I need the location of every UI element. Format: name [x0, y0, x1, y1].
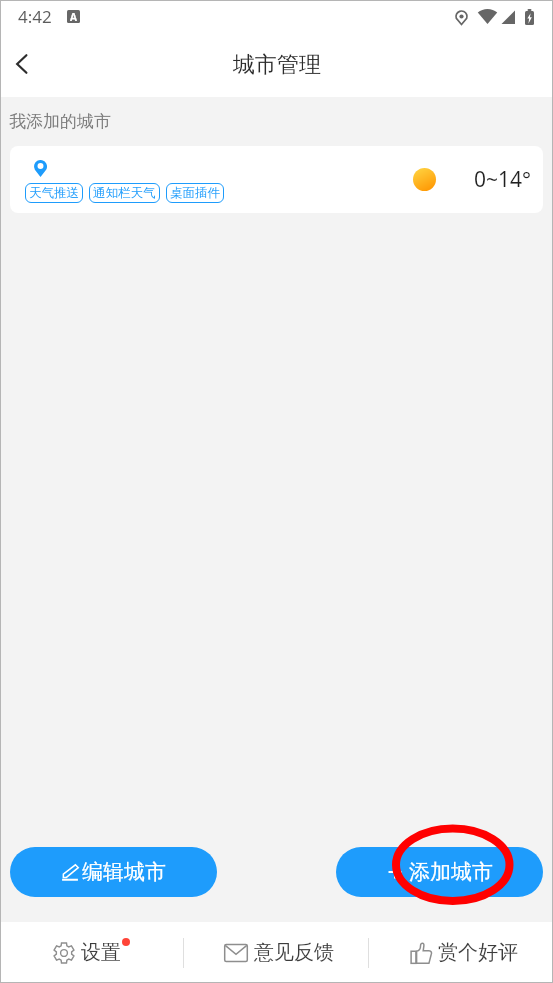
staticText: 赏个好评 — [438, 940, 518, 965]
staticText: 我添加的城市 — [9, 111, 111, 132]
staticText: 4:42 — [18, 5, 52, 28]
button[interactable]: 天气推送 — [10, 146, 543, 213]
button[interactable]: 编辑城市 — [10, 847, 217, 897]
button[interactable]: 添加城市 — [336, 847, 543, 897]
staticText: 城市管理 — [233, 51, 321, 79]
button[interactable]: 赏个好评 — [369, 922, 553, 983]
button[interactable]: 设置 — [0, 922, 183, 983]
staticText: 0~14° — [474, 165, 532, 194]
button[interactable]: Back — [0, 41, 48, 89]
staticText: 桌面插件 — [170, 185, 220, 201]
staticText: 意见反馈 — [254, 940, 334, 965]
staticText: A — [70, 10, 77, 23]
button[interactable]: 意见反馈 — [184, 922, 368, 983]
staticText: 通知栏天气 — [93, 185, 156, 201]
staticText: 天气推送 — [29, 185, 79, 201]
staticText: 设置 — [81, 940, 121, 965]
staticText: 添加城市 — [409, 859, 493, 885]
staticText: 编辑城市 — [82, 859, 166, 885]
